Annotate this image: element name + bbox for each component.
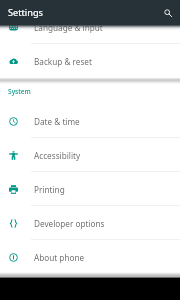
staticText: System	[8, 87, 31, 96]
staticText: Developer options	[34, 218, 105, 229]
button[interactable]: Accessibility	[0, 138, 180, 172]
button[interactable]: Backup & reset	[0, 44, 180, 78]
button[interactable]: Date & time	[0, 104, 180, 138]
staticText: Printing	[34, 184, 65, 195]
staticText: Settings	[8, 6, 43, 19]
staticText: Accessibility	[34, 150, 81, 161]
button[interactable]: About phone	[0, 240, 180, 274]
button[interactable]: Developer options	[0, 206, 180, 240]
button[interactable]: Language & input	[0, 10, 180, 44]
staticText: Language & input	[34, 22, 103, 33]
button[interactable]: Search	[161, 6, 175, 20]
staticText: Date & time	[34, 116, 80, 127]
staticText: Backup & reset	[34, 56, 92, 67]
button[interactable]: Printing	[0, 172, 180, 206]
staticText: About phone	[34, 252, 85, 263]
